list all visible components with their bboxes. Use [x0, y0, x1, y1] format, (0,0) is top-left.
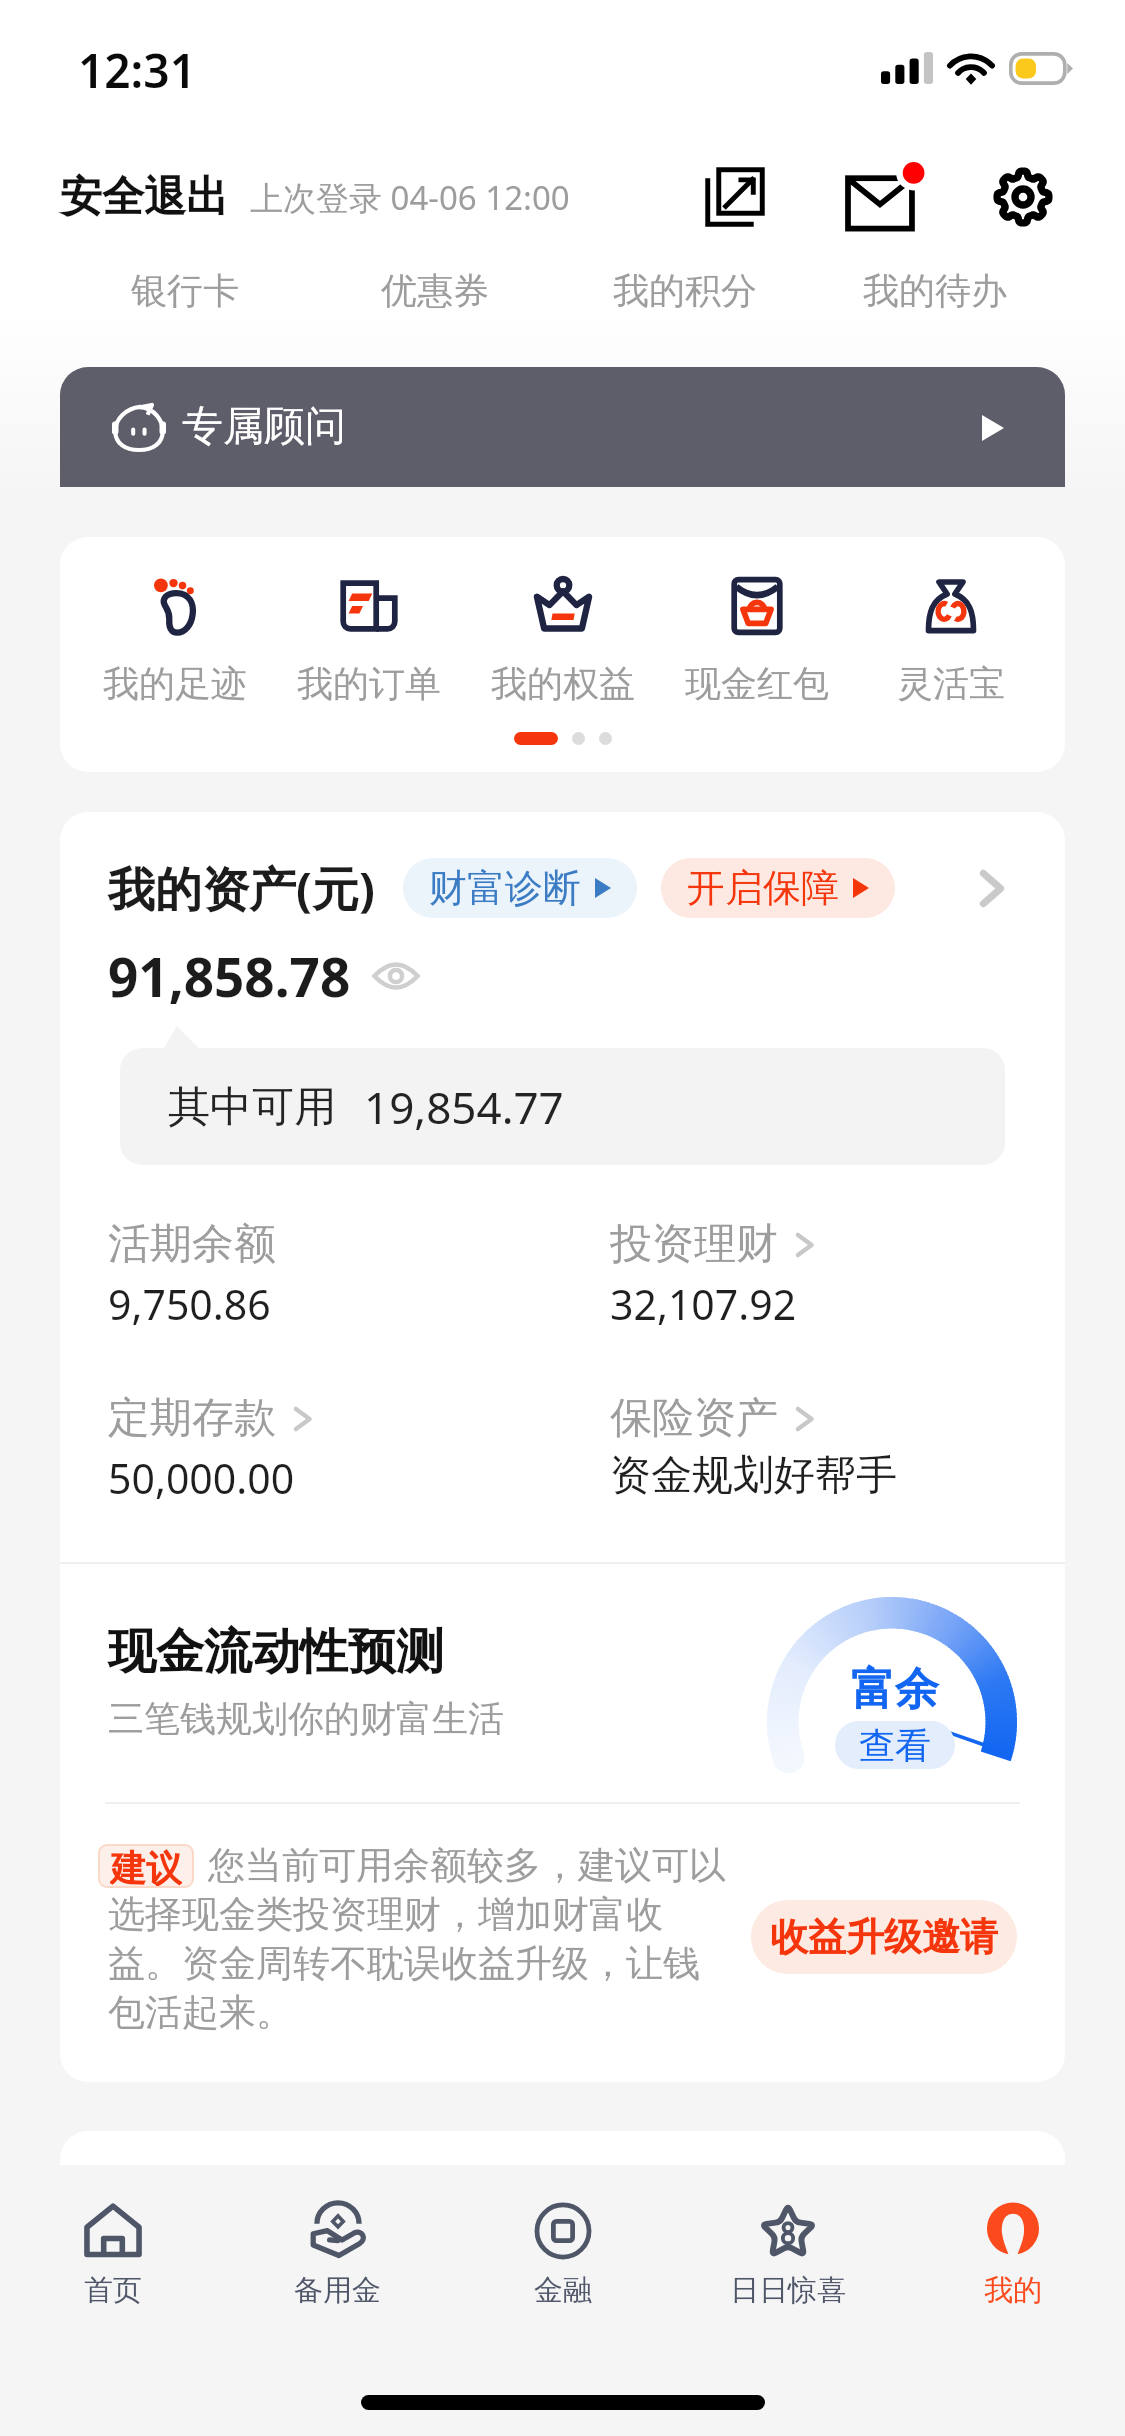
- staticText: 其中可用: [168, 1081, 336, 1134]
- staticText: 富余: [851, 1662, 939, 1717]
- button[interactable]: 定期存款: [108, 1392, 558, 1506]
- button[interactable]: 我的积分: [560, 258, 810, 322]
- staticText: 现金红包: [685, 661, 829, 706]
- button[interactable]: 我的权益: [466, 576, 660, 706]
- staticText: 资金规划好帮手: [610, 1450, 897, 1502]
- staticText: 备用金: [294, 2272, 381, 2309]
- button[interactable]: 投资理财: [610, 1218, 1060, 1332]
- staticText: 三笔钱规划你的财富生活: [108, 1696, 504, 1741]
- staticText: 日日惊喜: [730, 2272, 846, 2309]
- staticText: 您当前可用余额较多，建议可以: [208, 1842, 726, 1889]
- staticText: 开启保障: [687, 864, 839, 912]
- staticText: 建议: [110, 1846, 182, 1886]
- button[interactable]: 富余: [767, 1597, 1017, 1769]
- button[interactable]: 收益升级邀请: [751, 1900, 1017, 1974]
- staticText: 91,858.78: [108, 940, 351, 1012]
- button[interactable]: 我的订单: [272, 576, 466, 706]
- button[interactable]: 开启保障: [661, 858, 895, 918]
- button[interactable]: Share: [686, 148, 784, 246]
- button[interactable]: 日日惊喜: [675, 2200, 900, 2336]
- staticText: 12:31: [78, 39, 196, 102]
- button[interactable]: 安全退出: [60, 168, 570, 226]
- staticText: 50,000.00: [108, 1450, 295, 1506]
- staticText: 我的积分: [613, 268, 757, 313]
- button[interactable]: 优惠券: [310, 258, 560, 322]
- button[interactable]: 活期余额: [108, 1218, 558, 1332]
- button[interactable]: Settings: [974, 148, 1072, 246]
- staticText: 查看: [859, 1723, 931, 1768]
- staticText: 我的订单: [297, 661, 441, 706]
- staticText: 32,107.92: [610, 1276, 797, 1332]
- staticText: 活期余额: [108, 1218, 276, 1271]
- staticText: 我的资产(元): [108, 856, 375, 920]
- button[interactable]: 银行卡: [59, 258, 310, 322]
- staticText: 现金流动性预测: [108, 1622, 444, 1682]
- staticText: 银行卡: [131, 268, 239, 313]
- button[interactable]: 我的足迹: [77, 576, 272, 706]
- staticText: 优惠券: [381, 268, 489, 313]
- button[interactable]: 现金红包: [660, 576, 854, 706]
- staticText: 专属顾问: [182, 401, 346, 453]
- button[interactable]: Toggle balance visibility: [373, 960, 419, 992]
- button[interactable]: 财富诊断: [403, 858, 637, 918]
- staticText: 选择现金类投资理财，增加财富收 益。资金周转不耽误收益升级，让钱 包活起来。: [108, 1891, 700, 2036]
- staticText: 安全退出: [60, 171, 228, 224]
- button[interactable]: 金融: [450, 2200, 675, 2336]
- button[interactable]: More assets: [960, 856, 1024, 920]
- button[interactable]: 专属顾问: [60, 367, 1065, 487]
- button[interactable]: 首页: [0, 2200, 225, 2336]
- button[interactable]: Messages: [840, 146, 938, 244]
- staticText: 定期存款: [108, 1392, 276, 1445]
- staticText: 财富诊断: [429, 864, 581, 912]
- staticText: 首页: [84, 2272, 142, 2309]
- button[interactable]: 我的: [900, 2200, 1125, 2336]
- button[interactable]: 保险资产: [610, 1392, 1060, 1502]
- staticText: 上次登录 04-06 12:00: [250, 175, 570, 220]
- staticText: 我的: [984, 2272, 1042, 2309]
- staticText: 保险资产: [610, 1392, 778, 1445]
- button[interactable]: 我的待办: [810, 258, 1060, 322]
- staticText: 19,854.77: [364, 1077, 564, 1137]
- staticText: 收益升级邀请: [770, 1913, 998, 1961]
- staticText: 金融: [534, 2272, 592, 2309]
- staticText: 我的足迹: [103, 661, 247, 706]
- staticText: 我的待办: [863, 268, 1007, 313]
- button[interactable]: 灵活宝: [854, 576, 1048, 706]
- staticText: 9,750.86: [108, 1276, 271, 1332]
- staticText: 我的权益: [491, 661, 635, 706]
- staticText: 投资理财: [610, 1218, 778, 1271]
- staticText: 灵活宝: [897, 661, 1005, 706]
- button[interactable]: 备用金: [225, 2200, 450, 2336]
